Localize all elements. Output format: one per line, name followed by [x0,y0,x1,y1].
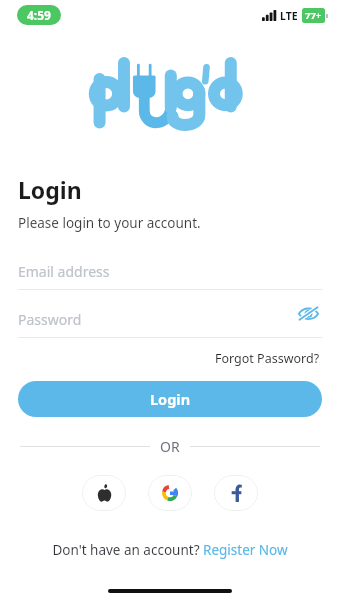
button[interactable]: Login [18,381,322,417]
button[interactable]: Sign in with Facebook [214,475,258,511]
staticText: Forgot Password? [215,350,320,367]
button[interactable]: Don't have an account? Register Now [0,541,340,559]
staticText: Login [18,174,82,205]
staticText: Don't have an account? Register Now [52,541,288,559]
staticText: Login [150,389,191,409]
staticText: Please login to your account. [18,214,201,232]
button[interactable]: Forgot Password? [213,348,322,369]
button[interactable]: Sign in with Apple [82,475,126,511]
button[interactable]: Show password [295,303,322,324]
staticText: 77+ [305,9,322,22]
button[interactable]: Email address [18,258,322,290]
staticText: 4:59 [27,7,51,23]
staticText: OR [160,437,180,456]
staticText: Password [18,310,82,329]
staticText: Email address [18,262,110,281]
button[interactable]: Sign in with Google [148,475,192,511]
staticText: LTE [280,9,298,23]
button[interactable]: Password [18,306,322,338]
